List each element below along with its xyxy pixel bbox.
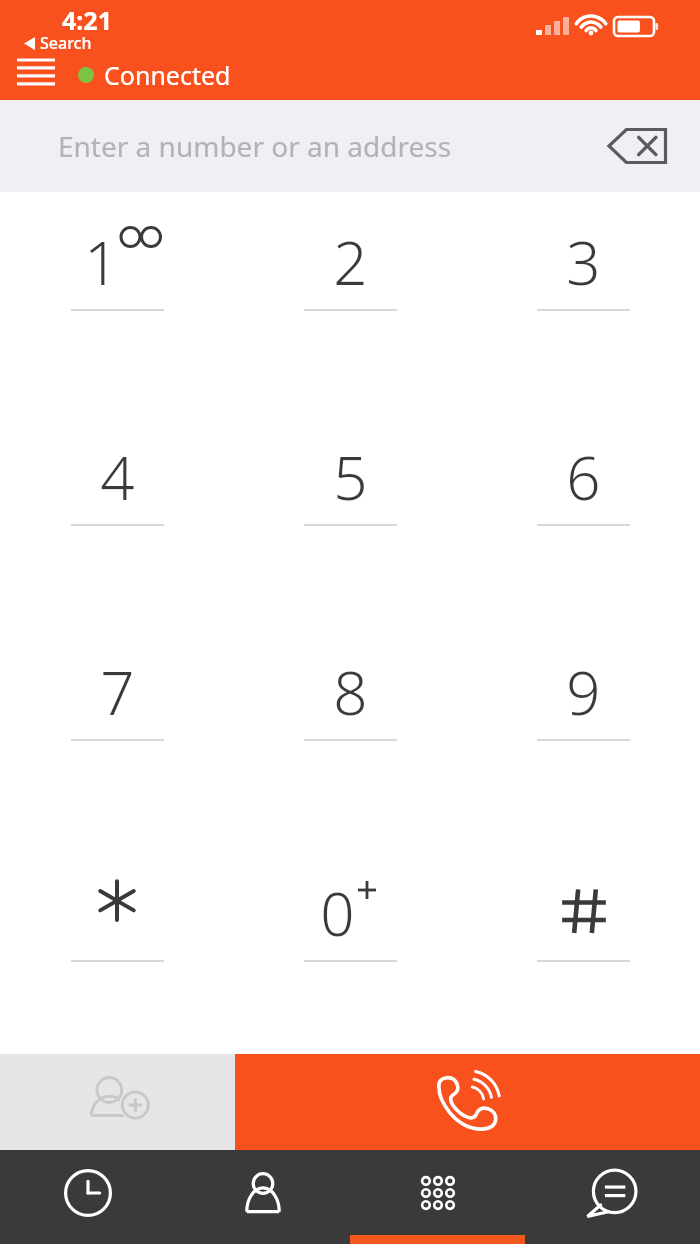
button[interactable]: Add contact <box>0 1054 235 1145</box>
staticText: 8 <box>333 651 368 733</box>
button[interactable]: Menu <box>8 52 64 92</box>
button[interactable]: Backspace <box>602 116 674 176</box>
staticText: 5 <box>333 436 368 518</box>
button[interactable]: Call <box>235 1054 700 1145</box>
button[interactable]: Contacts <box>175 1150 350 1235</box>
button[interactable]: Key 6 <box>467 413 700 628</box>
button[interactable]: Messages <box>525 1150 700 1235</box>
button[interactable]: Key 9 <box>467 628 700 843</box>
button[interactable]: Key # <box>467 843 700 1027</box>
button[interactable]: Key 0 <box>234 843 467 1027</box>
button[interactable]: Key 5 <box>234 413 467 628</box>
staticText: 2 <box>333 221 368 303</box>
button[interactable]: Search <box>22 31 94 55</box>
button[interactable]: Key 3 <box>467 198 700 413</box>
button[interactable]: Keypad <box>350 1150 525 1235</box>
staticText: 4:21 <box>62 3 112 37</box>
staticText: 6 <box>566 436 601 518</box>
button[interactable]: Key 1 <box>0 198 234 413</box>
button[interactable]: Connected <box>76 56 233 94</box>
button[interactable]: Key 4 <box>0 413 234 628</box>
staticText: 0 <box>320 872 355 954</box>
staticText: Search <box>40 32 92 54</box>
button[interactable]: Key 8 <box>234 628 467 843</box>
staticText: 9 <box>566 651 601 733</box>
staticText: 7 <box>100 651 135 733</box>
button[interactable]: Key * <box>0 843 234 1027</box>
staticText: 3 <box>566 221 601 303</box>
staticText: Connected <box>104 58 231 92</box>
button[interactable]: Key 2 <box>234 198 467 413</box>
staticText: 4 <box>100 436 135 518</box>
staticText: 1 <box>84 221 119 303</box>
staticText: Enter a number or an address <box>58 127 452 165</box>
button[interactable]: Key 7 <box>0 628 234 843</box>
button[interactable]: Recents <box>0 1150 175 1235</box>
